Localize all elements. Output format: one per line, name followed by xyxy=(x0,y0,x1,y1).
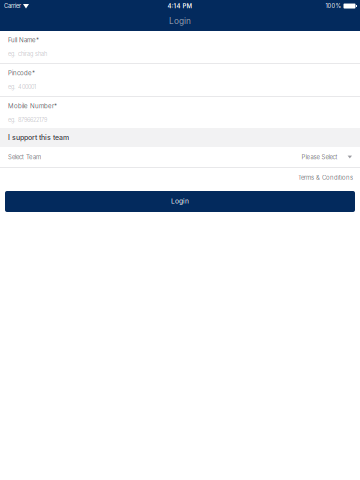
staticText: eg. 8796622179 xyxy=(8,117,47,123)
staticText: eg. chirag shah xyxy=(8,51,47,57)
button[interactable]: Terms & Conditions xyxy=(0,168,360,191)
staticText: 100% xyxy=(325,2,341,9)
staticText: Carrier xyxy=(4,2,21,9)
staticText: Login xyxy=(169,16,191,26)
staticText: Please Select xyxy=(302,153,338,161)
staticText: Mobile Number* xyxy=(8,102,57,110)
button[interactable]: Select Team xyxy=(0,147,360,167)
staticText: Full Name* xyxy=(8,36,39,44)
staticText: eg. 400001 xyxy=(8,84,36,90)
button[interactable]: Login xyxy=(5,191,355,212)
staticText: Select Team xyxy=(8,153,41,161)
staticText: Login xyxy=(171,197,189,205)
staticText: I support this team xyxy=(8,133,69,142)
staticText: Pincode* xyxy=(8,69,35,77)
staticText: 4:14 PM xyxy=(167,2,192,10)
staticText: Terms & Conditions xyxy=(298,174,353,181)
